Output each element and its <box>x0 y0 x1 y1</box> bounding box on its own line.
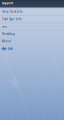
staticText: Help Desk Info <box>2 10 23 13</box>
staticText: FAQ <box>2 25 7 28</box>
button[interactable]: About <box>0 38 64 44</box>
staticText: Back <box>7 47 12 50</box>
button[interactable]: DetailLog <box>0 31 64 37</box>
button[interactable]: FAQ <box>0 23 64 30</box>
button[interactable]: Back <box>0 45 64 52</box>
staticText: About <box>2 39 11 43</box>
button[interactable]: Card Type Info <box>0 16 64 22</box>
button[interactable]: Help Desk Info <box>0 8 64 15</box>
staticText: DetailLog <box>2 32 15 36</box>
staticText: Card Type Info <box>2 17 22 21</box>
staticText: Support <box>2 1 13 5</box>
